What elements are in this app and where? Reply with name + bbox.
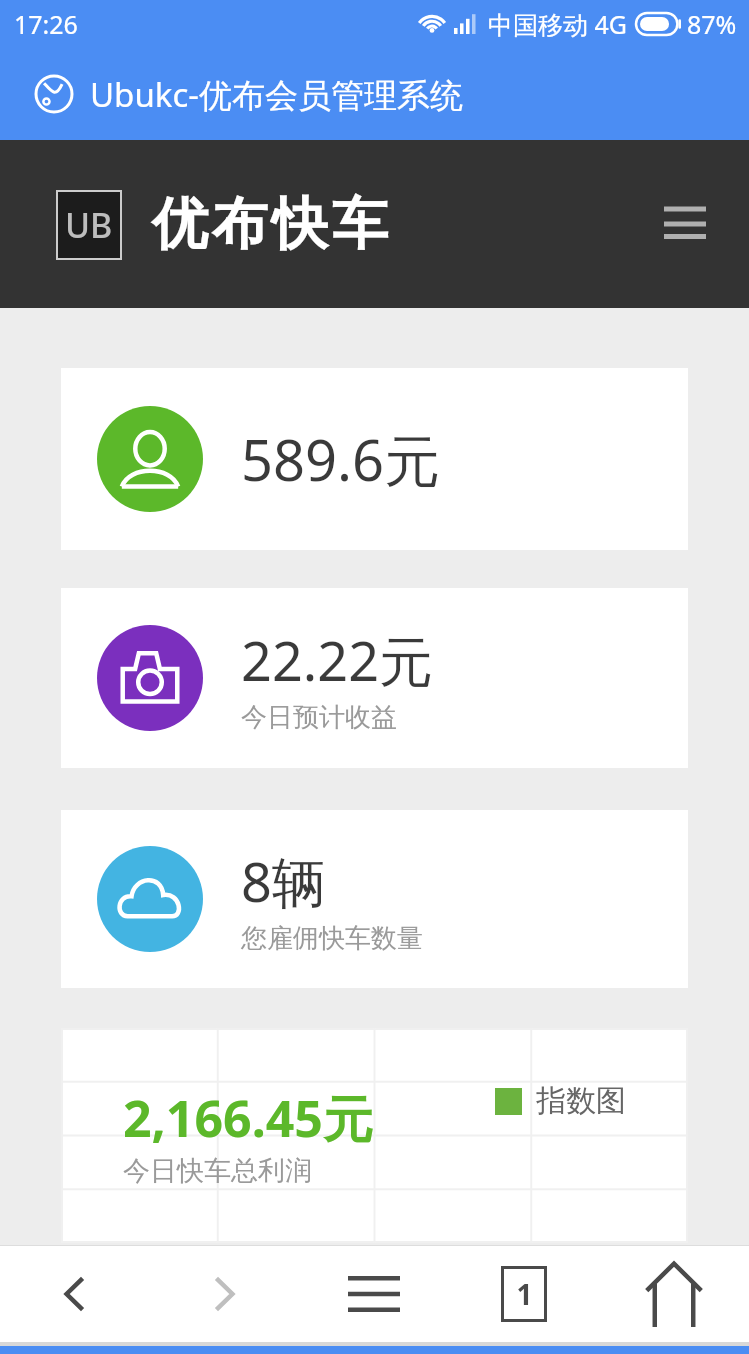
staticText: 指数图 <box>536 1082 626 1120</box>
button[interactable]: Menu <box>657 196 713 252</box>
button[interactable]: Forward <box>149 1246 299 1342</box>
staticText: 2,166.45元 <box>123 1084 373 1152</box>
button[interactable]: Menu <box>299 1246 449 1342</box>
staticText: Ubukc-优布会员管理系统 <box>90 72 463 117</box>
staticText: 优布快车 <box>150 189 390 260</box>
staticText: UB <box>65 202 113 248</box>
staticText: 中国移动 4G <box>488 7 628 41</box>
button[interactable]: Back <box>0 1246 149 1342</box>
button[interactable]: Ubukc-优布会员管理系统 <box>0 48 749 140</box>
staticText: 今日快车总利润 <box>123 1154 312 1188</box>
button[interactable]: 589.6元 <box>61 368 688 550</box>
button[interactable]: 8辆 <box>61 810 688 988</box>
staticText: 今日预计收益 <box>241 701 397 734</box>
staticText: 589.6元 <box>241 421 441 497</box>
staticText: 8辆 <box>241 844 326 918</box>
button[interactable]: Home <box>599 1246 749 1342</box>
staticText: 您雇佣快车数量 <box>241 922 423 955</box>
button[interactable]: 2,166.45元 <box>61 1028 688 1243</box>
staticText: 22.22元 <box>241 623 434 697</box>
staticText: 1 <box>516 1275 533 1313</box>
staticText: 17:26 <box>14 7 78 41</box>
button[interactable]: Tabs <box>449 1246 599 1342</box>
button[interactable]: 22.22元 <box>61 588 688 768</box>
staticText: 87% <box>687 7 737 41</box>
